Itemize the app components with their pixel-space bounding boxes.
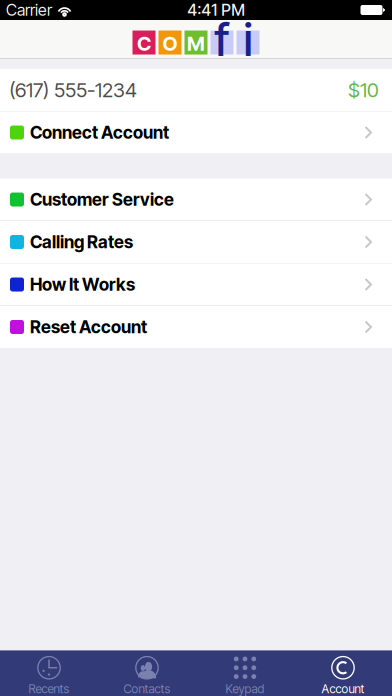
button[interactable]: Account <box>294 650 392 696</box>
button[interactable]: Keypad <box>196 650 294 696</box>
staticText: i <box>243 12 252 67</box>
button[interactable]: Calling Rates <box>0 221 392 263</box>
staticText: Connect Account <box>30 122 169 143</box>
button[interactable]: Contacts <box>98 650 196 696</box>
staticText: $10 <box>348 78 379 102</box>
staticText: How It Works <box>30 274 135 295</box>
button[interactable]: Connect Account <box>0 111 392 153</box>
staticText: Recents <box>28 682 69 696</box>
staticText: M <box>187 31 205 56</box>
button[interactable]: Customer Service <box>0 178 392 220</box>
staticText: Account <box>321 682 364 696</box>
button[interactable]: Reset Account <box>0 306 392 348</box>
staticText: C <box>137 31 151 56</box>
button[interactable]: How It Works <box>0 263 392 305</box>
staticText: Keypad <box>225 682 264 696</box>
staticText: (617) 555-1234 <box>9 78 137 102</box>
staticText: 4:41 PM <box>187 0 245 20</box>
staticText: Contacts <box>123 682 170 696</box>
button[interactable]: Recents <box>0 650 98 696</box>
staticText: Reset Account <box>30 316 147 337</box>
staticText: Customer Service <box>30 189 174 210</box>
staticText: Carrier <box>6 0 52 20</box>
staticText: f <box>214 12 229 67</box>
staticText: O <box>162 31 177 56</box>
staticText: Calling Rates <box>30 231 133 252</box>
